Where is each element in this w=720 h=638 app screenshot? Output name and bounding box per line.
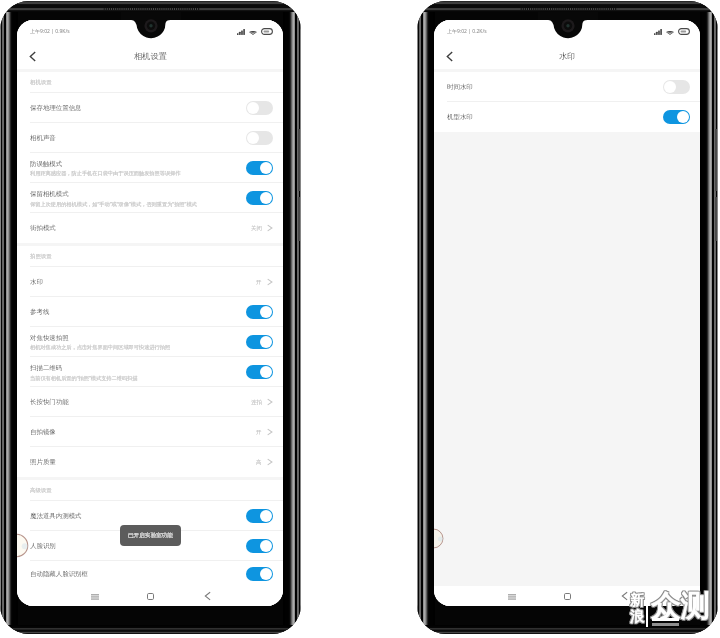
button[interactable]: Toggle on — [246, 539, 273, 553]
staticText: 关闭 — [251, 225, 262, 232]
staticText: 当前仅有相机后置的“拍照”模式支持二维码扫描 — [30, 374, 138, 381]
staticText: 街拍模式 — [30, 224, 56, 232]
button[interactable]: Toggle on — [246, 335, 273, 349]
button[interactable]: Toggle on — [246, 161, 273, 175]
staticText: 新 — [631, 592, 645, 610]
staticText: 连拍 — [251, 399, 262, 406]
staticText: 新 — [629, 593, 643, 611]
staticText: 众测 — [650, 587, 708, 624]
button[interactable]: 照片质量 — [17, 447, 283, 477]
staticText: 开 — [256, 279, 262, 286]
button[interactable]: 相机声音 — [17, 123, 283, 153]
staticText: 浪 — [629, 607, 643, 625]
button[interactable]: Toggle on — [246, 567, 273, 581]
staticText: 相机声音 — [30, 134, 56, 142]
staticText: 防误触模式 — [30, 160, 63, 168]
staticText: 魔法道具内测模式 — [30, 512, 82, 520]
staticText: 浪 — [631, 607, 645, 625]
button[interactable]: Toggle on — [246, 509, 273, 523]
staticText: 浪 — [629, 609, 643, 627]
staticText: 长按快门功能 — [30, 398, 69, 406]
staticText: 浪 — [631, 609, 645, 627]
staticText: 浪 — [629, 608, 643, 626]
button[interactable]: Toggle on — [246, 365, 273, 379]
staticText: 新 — [629, 591, 643, 609]
button[interactable]: 对焦快速拍照 — [17, 327, 283, 357]
staticText: 自动隐藏人脸识别框 — [30, 570, 88, 578]
staticText: 参考线 — [30, 308, 50, 316]
staticText: 高级设置 — [30, 487, 52, 494]
button[interactable]: 机型水印 — [434, 102, 700, 132]
button[interactable]: 自动隐藏人脸识别框 — [17, 561, 283, 586]
staticText: 上午9:02 | 0.2K/s — [447, 28, 487, 35]
button[interactable]: Toggle on — [246, 191, 273, 205]
staticText: 保留上次使用的相机模式，如“手动”或“录像”模式，否则重置为“拍照”模式 — [30, 200, 197, 207]
staticText: 众测 — [652, 588, 710, 625]
staticText: 保留相机模式 — [30, 190, 69, 198]
button[interactable]: 人脸识别 — [17, 531, 283, 561]
staticText: 新 — [629, 592, 643, 610]
staticText: 人脸识别 — [30, 542, 56, 550]
button[interactable]: Back — [614, 586, 634, 606]
staticText: 利用距离感应器，防止手机在口袋中由于误压而触发拍照等误操作 — [30, 170, 181, 177]
button[interactable]: Toggle off — [246, 101, 273, 115]
staticText: 众测 — [651, 587, 709, 624]
button[interactable]: Back — [17, 43, 48, 69]
staticText: 众测 — [650, 589, 708, 626]
button[interactable]: 水印 — [17, 267, 283, 297]
button[interactable]: Toggle on — [246, 305, 273, 319]
staticText: 新 — [631, 593, 645, 611]
button[interactable]: Recent apps — [85, 586, 105, 606]
staticText: 新 — [630, 591, 644, 609]
staticText: 扫描二维码 — [30, 364, 63, 372]
staticText: 相机对焦成功之后，点击对焦界面中间区域即可快速进行拍照 — [30, 344, 171, 351]
button[interactable]: Home — [557, 586, 577, 606]
button[interactable]: 保留相机模式 — [17, 183, 283, 213]
button[interactable]: Back — [434, 43, 465, 69]
button[interactable]: Recent apps — [502, 586, 522, 606]
button[interactable]: 魔法道具内测模式 — [17, 501, 283, 531]
button[interactable]: 街拍模式 — [17, 213, 283, 243]
button[interactable]: 扫描二维码 — [17, 357, 283, 387]
staticText: 浪 — [631, 608, 645, 626]
staticText: 浪 — [630, 607, 644, 625]
staticText: 众测 — [651, 588, 709, 625]
staticText: 拍照设置 — [30, 253, 52, 260]
staticText: 时间水印 — [447, 83, 473, 91]
staticText: 上午9:02 | 0.9K/s — [30, 28, 70, 35]
staticText: 浪 — [630, 608, 644, 626]
staticText: 水印 — [30, 278, 43, 286]
staticText: 已开启实验室功能 — [128, 532, 173, 539]
staticText: 自拍镜像 — [30, 428, 56, 436]
staticText: 众测 — [651, 589, 709, 626]
staticText: 浪 — [630, 609, 644, 627]
staticText: 机型水印 — [447, 113, 473, 121]
button[interactable]: Toggle off — [663, 80, 690, 94]
staticText: 相机设置 — [134, 51, 167, 61]
staticText: 新 — [631, 591, 645, 609]
staticText: 众测 — [652, 589, 710, 626]
button[interactable]: 长按快门功能 — [17, 387, 283, 417]
staticText: 相机设置 — [30, 79, 52, 86]
button[interactable]: Home — [140, 586, 160, 606]
button[interactable]: Toggle on — [663, 110, 690, 124]
staticText: 众测 — [650, 588, 708, 625]
staticText: 水印 — [559, 51, 576, 61]
button[interactable]: 保存地理位置信息 — [17, 93, 283, 123]
staticText: 新 — [630, 592, 644, 610]
staticText: 照片质量 — [30, 458, 56, 466]
button[interactable]: 自拍镜像 — [17, 417, 283, 447]
button[interactable]: 参考线 — [17, 297, 283, 327]
staticText: 众测 — [652, 587, 710, 624]
button[interactable]: 防误触模式 — [17, 153, 283, 183]
staticText: 保存地理位置信息 — [30, 104, 82, 112]
button[interactable]: Back — [197, 586, 217, 606]
staticText: 新 — [630, 593, 644, 611]
staticText: 开 — [256, 429, 262, 436]
button[interactable]: Toggle off — [246, 131, 273, 145]
staticText: 高 — [256, 459, 262, 466]
staticText: 对焦快速拍照 — [30, 334, 69, 342]
button[interactable]: 时间水印 — [434, 72, 700, 102]
